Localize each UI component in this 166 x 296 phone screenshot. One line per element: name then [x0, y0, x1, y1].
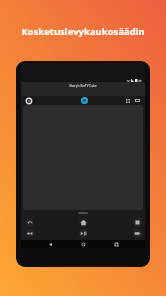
button[interactable]: Fast forward — [133, 229, 142, 238]
button[interactable]: Menu — [133, 218, 142, 227]
button[interactable]: Keyboard — [123, 96, 133, 105]
button[interactable]: Power — [23, 96, 34, 105]
button[interactable]: Home — [79, 218, 88, 227]
staticText: Sharp's fireTV Cube — [69, 84, 97, 88]
staticText: Kosketuslevykaukosäädin — [21, 25, 145, 38]
button[interactable]: Rewind — [25, 229, 34, 238]
button[interactable]: Back — [44, 240, 56, 248]
button[interactable]: Play pause — [79, 229, 88, 238]
button[interactable]: Pointer — [80, 96, 88, 105]
button[interactable]: Home — [77, 240, 89, 248]
button[interactable]: Back — [25, 218, 34, 227]
button[interactable]: Recents — [110, 240, 122, 248]
button[interactable]: Display — [132, 96, 142, 105]
